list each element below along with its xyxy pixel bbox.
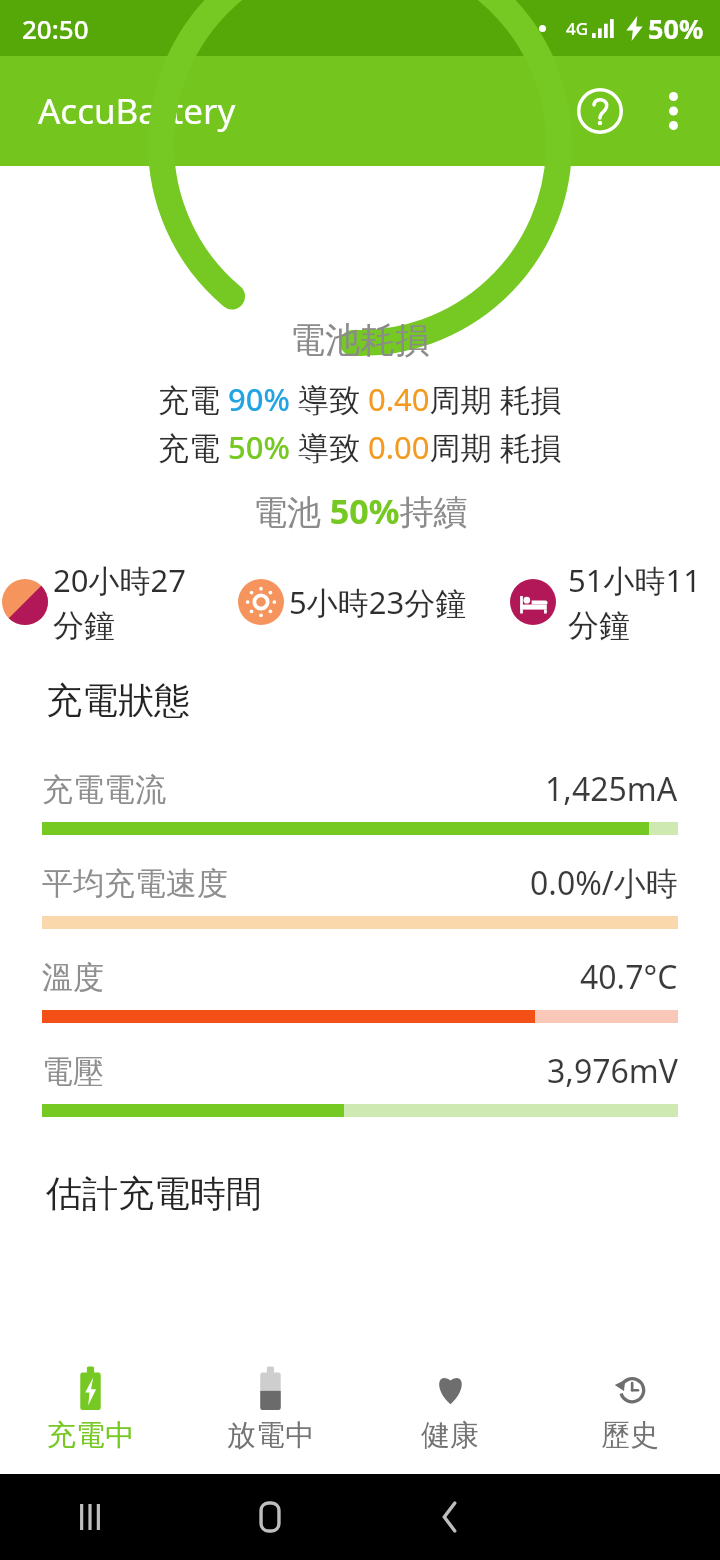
- button[interactable]: 健康: [360, 1346, 540, 1474]
- staticText: AccuBattery: [38, 87, 236, 135]
- staticText: 50%: [648, 10, 704, 47]
- staticText: 充電中: [47, 1417, 134, 1454]
- staticText: 20:50: [22, 11, 89, 46]
- staticText: 溫度: [42, 958, 104, 997]
- staticText: 51小時11 分鐘: [568, 559, 701, 645]
- staticText: 3,976mV: [547, 1049, 678, 1093]
- staticText: 電池 50%持續: [253, 488, 468, 534]
- staticText: 40.7°C: [580, 955, 678, 999]
- button[interactable]: Help: [562, 73, 638, 149]
- staticText: 4G: [566, 17, 589, 40]
- button[interactable]: 平均充電速度: [42, 861, 678, 929]
- staticText: 1,425mA: [545, 767, 678, 811]
- staticText: 平均充電速度: [42, 864, 228, 903]
- staticText: 充電 90% 導致 0.40周期 耗損: [158, 378, 562, 420]
- staticText: 電壓: [42, 1052, 104, 1091]
- staticText: 充電 50% 導致 0.00周期 耗損: [158, 426, 562, 468]
- staticText: 估計充電時間: [46, 1171, 262, 1216]
- button[interactable]: Back: [360, 1474, 540, 1560]
- staticText: 電池耗損: [290, 318, 430, 362]
- button[interactable]: More options: [638, 76, 708, 146]
- staticText: 20小時27 分鐘: [53, 559, 186, 645]
- button[interactable]: 歷史: [540, 1346, 720, 1474]
- staticText: 0.0%/小時: [530, 861, 678, 905]
- button[interactable]: 充電電流: [42, 767, 678, 835]
- staticText: 歷史: [601, 1417, 659, 1454]
- staticText: 5小時23分鐘: [289, 581, 467, 623]
- button[interactable]: 電壓: [42, 1049, 678, 1117]
- button[interactable]: Home: [180, 1474, 360, 1560]
- button[interactable]: 放電中: [180, 1346, 360, 1474]
- staticText: 健康: [421, 1417, 479, 1454]
- button[interactable]: 充電中: [0, 1346, 180, 1474]
- button[interactable]: Recents: [0, 1474, 180, 1560]
- staticText: 充電電流: [42, 770, 166, 809]
- staticText: 放電中: [227, 1417, 314, 1454]
- staticText: 充電狀態: [46, 678, 190, 723]
- button[interactable]: 溫度: [42, 955, 678, 1023]
